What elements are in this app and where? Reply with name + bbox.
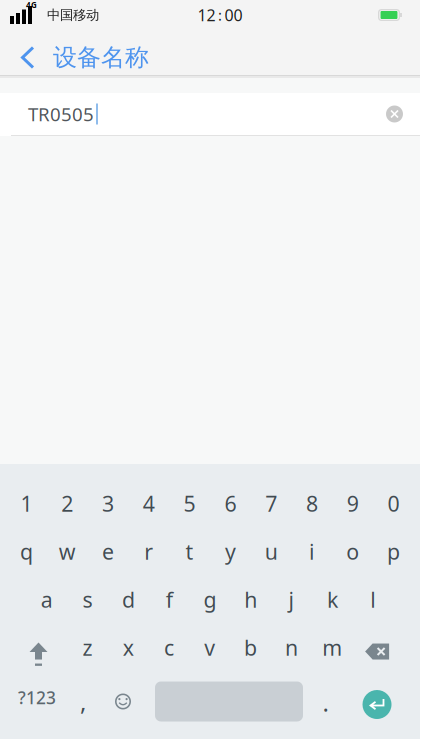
button[interactable]: v xyxy=(189,623,230,671)
button[interactable]: ?123 xyxy=(6,671,68,731)
staticText: 5 xyxy=(184,489,196,518)
button[interactable]: x xyxy=(108,623,149,671)
staticText: f xyxy=(166,585,173,614)
button[interactable]: z xyxy=(67,623,108,671)
button[interactable]: l xyxy=(353,575,394,623)
staticText: x xyxy=(123,633,134,662)
staticText: i xyxy=(309,537,315,566)
button[interactable]: q xyxy=(6,527,47,575)
button[interactable]: i xyxy=(292,527,332,575)
button[interactable] xyxy=(6,623,67,671)
staticText: 中国移动 xyxy=(47,7,99,23)
staticText: q xyxy=(20,537,33,566)
staticText: 4G xyxy=(26,0,37,10)
button[interactable]: g xyxy=(190,575,230,623)
button[interactable]: j xyxy=(271,575,312,623)
staticText: n xyxy=(285,633,298,662)
button[interactable]: . xyxy=(303,671,348,731)
button[interactable]: 9 xyxy=(332,479,373,527)
staticText: d xyxy=(122,585,135,614)
staticText: o xyxy=(346,537,359,566)
button[interactable]: 1 xyxy=(6,479,47,527)
button[interactable]: 4 xyxy=(128,479,169,527)
button[interactable]: k xyxy=(312,575,353,623)
staticText: z xyxy=(82,633,92,662)
staticText: y xyxy=(225,537,236,566)
staticText: . xyxy=(322,687,328,718)
staticText: j xyxy=(289,585,295,614)
button[interactable]: f xyxy=(149,575,190,623)
staticText: 4 xyxy=(143,489,155,518)
button[interactable]: h xyxy=(230,575,271,623)
staticText: l xyxy=(370,585,376,614)
staticText: 00 xyxy=(224,4,242,26)
button[interactable]: e xyxy=(88,527,128,575)
button[interactable] xyxy=(386,105,403,122)
staticText: u xyxy=(265,537,278,566)
button[interactable] xyxy=(348,671,406,731)
button[interactable]: d xyxy=(108,575,149,623)
button[interactable]: , xyxy=(68,671,98,731)
staticText: 3 xyxy=(102,489,114,518)
staticText: 2 xyxy=(61,489,73,518)
staticText: r xyxy=(144,537,153,566)
staticText: g xyxy=(203,585,216,614)
staticText: 6 xyxy=(224,489,236,518)
button[interactable]: n xyxy=(271,623,312,671)
button[interactable]: o xyxy=(332,527,373,575)
staticText: e xyxy=(102,537,114,566)
button[interactable]: 2 xyxy=(47,479,88,527)
button[interactable]: y xyxy=(210,527,251,575)
staticText: p xyxy=(387,537,400,566)
staticText: t xyxy=(186,537,194,566)
button[interactable]: TR0505 xyxy=(0,93,420,135)
button[interactable]: 8 xyxy=(292,479,332,527)
staticText: b xyxy=(244,633,257,662)
staticText: 8 xyxy=(306,489,318,518)
button[interactable]: w xyxy=(47,527,88,575)
staticText: 7 xyxy=(265,489,277,518)
staticText: ?123 xyxy=(18,686,56,709)
staticText: s xyxy=(83,585,93,614)
staticText: 12 xyxy=(197,4,215,26)
staticText: m xyxy=(322,633,342,662)
button[interactable]: m xyxy=(312,623,353,671)
button[interactable]: a xyxy=(26,575,67,623)
staticText: w xyxy=(59,537,76,566)
button[interactable]: 0 xyxy=(373,479,414,527)
staticText: v xyxy=(204,633,215,662)
staticText: : xyxy=(218,5,222,25)
button[interactable]: t xyxy=(169,527,210,575)
button[interactable]: 7 xyxy=(251,479,292,527)
staticText: TR0505 xyxy=(28,102,94,126)
button[interactable]: u xyxy=(251,527,292,575)
button[interactable] xyxy=(155,681,303,721)
button[interactable]: 5 xyxy=(169,479,210,527)
staticText: a xyxy=(41,585,53,614)
button[interactable]: c xyxy=(149,623,189,671)
staticText: 1 xyxy=(20,489,32,518)
staticText: h xyxy=(244,585,257,614)
staticText: , xyxy=(80,686,86,717)
button[interactable]: p xyxy=(373,527,414,575)
staticText: 设备名称 xyxy=(53,43,149,72)
staticText: k xyxy=(327,585,338,614)
button[interactable]: b xyxy=(230,623,271,671)
button[interactable]: 3 xyxy=(88,479,128,527)
button[interactable]: s xyxy=(67,575,108,623)
button[interactable] xyxy=(353,623,402,671)
button[interactable] xyxy=(98,671,148,731)
button[interactable]: 设备名称 xyxy=(0,38,149,67)
staticText: c xyxy=(164,633,174,662)
button[interactable]: 6 xyxy=(210,479,251,527)
staticText: 9 xyxy=(347,489,359,518)
staticText: 0 xyxy=(388,489,400,518)
button[interactable]: r xyxy=(128,527,169,575)
